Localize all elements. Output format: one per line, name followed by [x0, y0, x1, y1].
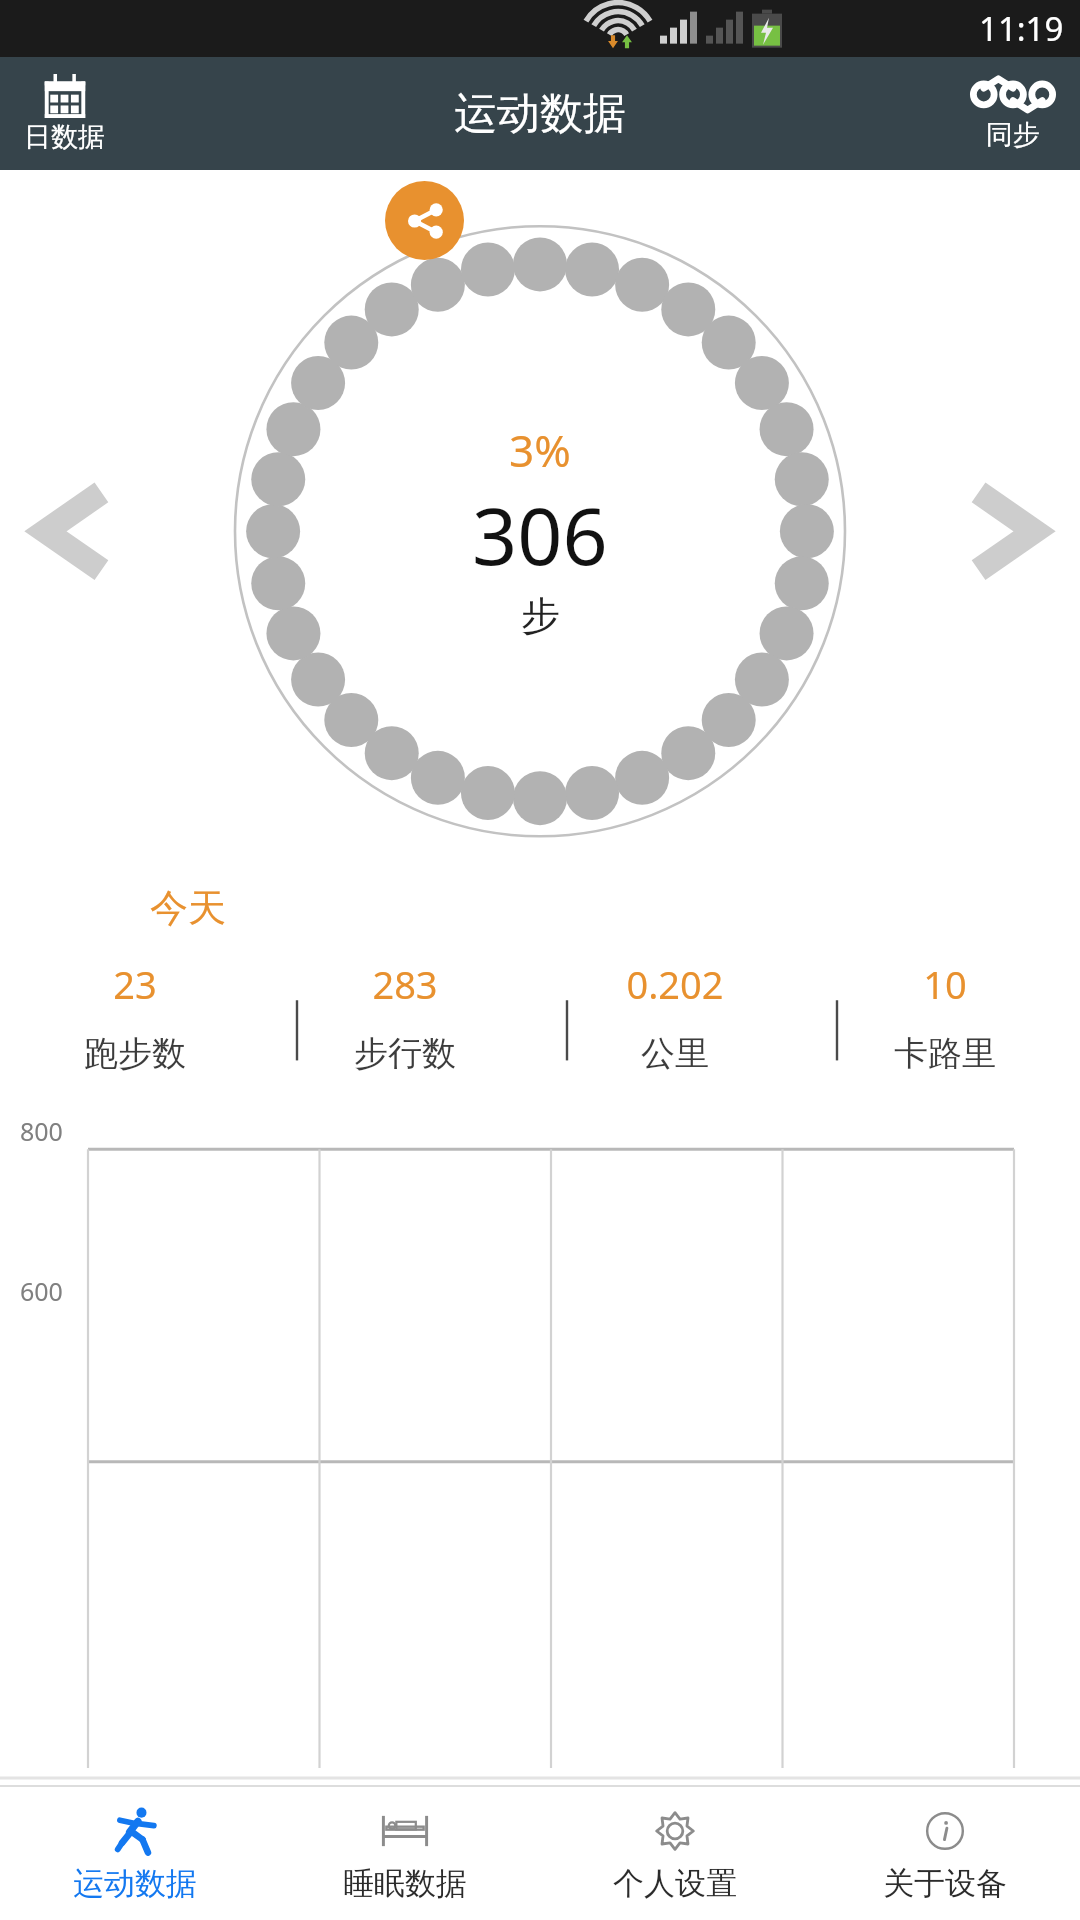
staticText: 跑步数	[84, 1032, 186, 1075]
button[interactable]: 日数据	[14, 70, 115, 158]
button[interactable]: Next day	[980, 487, 1060, 567]
staticText: 800	[20, 1114, 63, 1148]
staticText: 同步	[986, 118, 1040, 152]
staticText: 步行数	[354, 1032, 456, 1075]
button[interactable]: 10	[810, 958, 1080, 1086]
staticText: 关于设备	[883, 1864, 1007, 1903]
staticText: 日数据	[24, 120, 105, 154]
staticText: 公里	[641, 1032, 709, 1075]
staticText: 600	[20, 1274, 63, 1308]
button[interactable]: 同步	[962, 72, 1064, 156]
button[interactable]: 睡眠数据	[270, 1786, 540, 1920]
button[interactable]: 23	[0, 958, 270, 1086]
button[interactable]: Share	[385, 181, 464, 260]
button[interactable]: 关于设备	[810, 1786, 1080, 1920]
button[interactable]: Previous day	[20, 487, 100, 567]
staticText: 306	[472, 481, 608, 589]
staticText: 0.202	[626, 958, 724, 1010]
staticText: 运动数据	[454, 87, 626, 141]
button[interactable]: 0.202	[540, 958, 810, 1086]
staticText: 283	[372, 958, 438, 1010]
staticText: 步	[521, 591, 560, 640]
button[interactable]: 283	[270, 958, 540, 1086]
staticText: 卡路里	[894, 1032, 996, 1075]
staticText: 10	[923, 958, 967, 1010]
staticText: 23	[113, 958, 157, 1010]
staticText: 11:19	[979, 6, 1064, 51]
staticText: 运动数据	[73, 1864, 197, 1903]
staticText: 个人设置	[613, 1864, 737, 1903]
button[interactable]: 个人设置	[540, 1786, 810, 1920]
staticText: 睡眠数据	[343, 1864, 467, 1903]
staticText: 3%	[509, 420, 571, 480]
staticText: 今天	[150, 884, 226, 932]
button[interactable]: 运动数据	[0, 1786, 270, 1920]
